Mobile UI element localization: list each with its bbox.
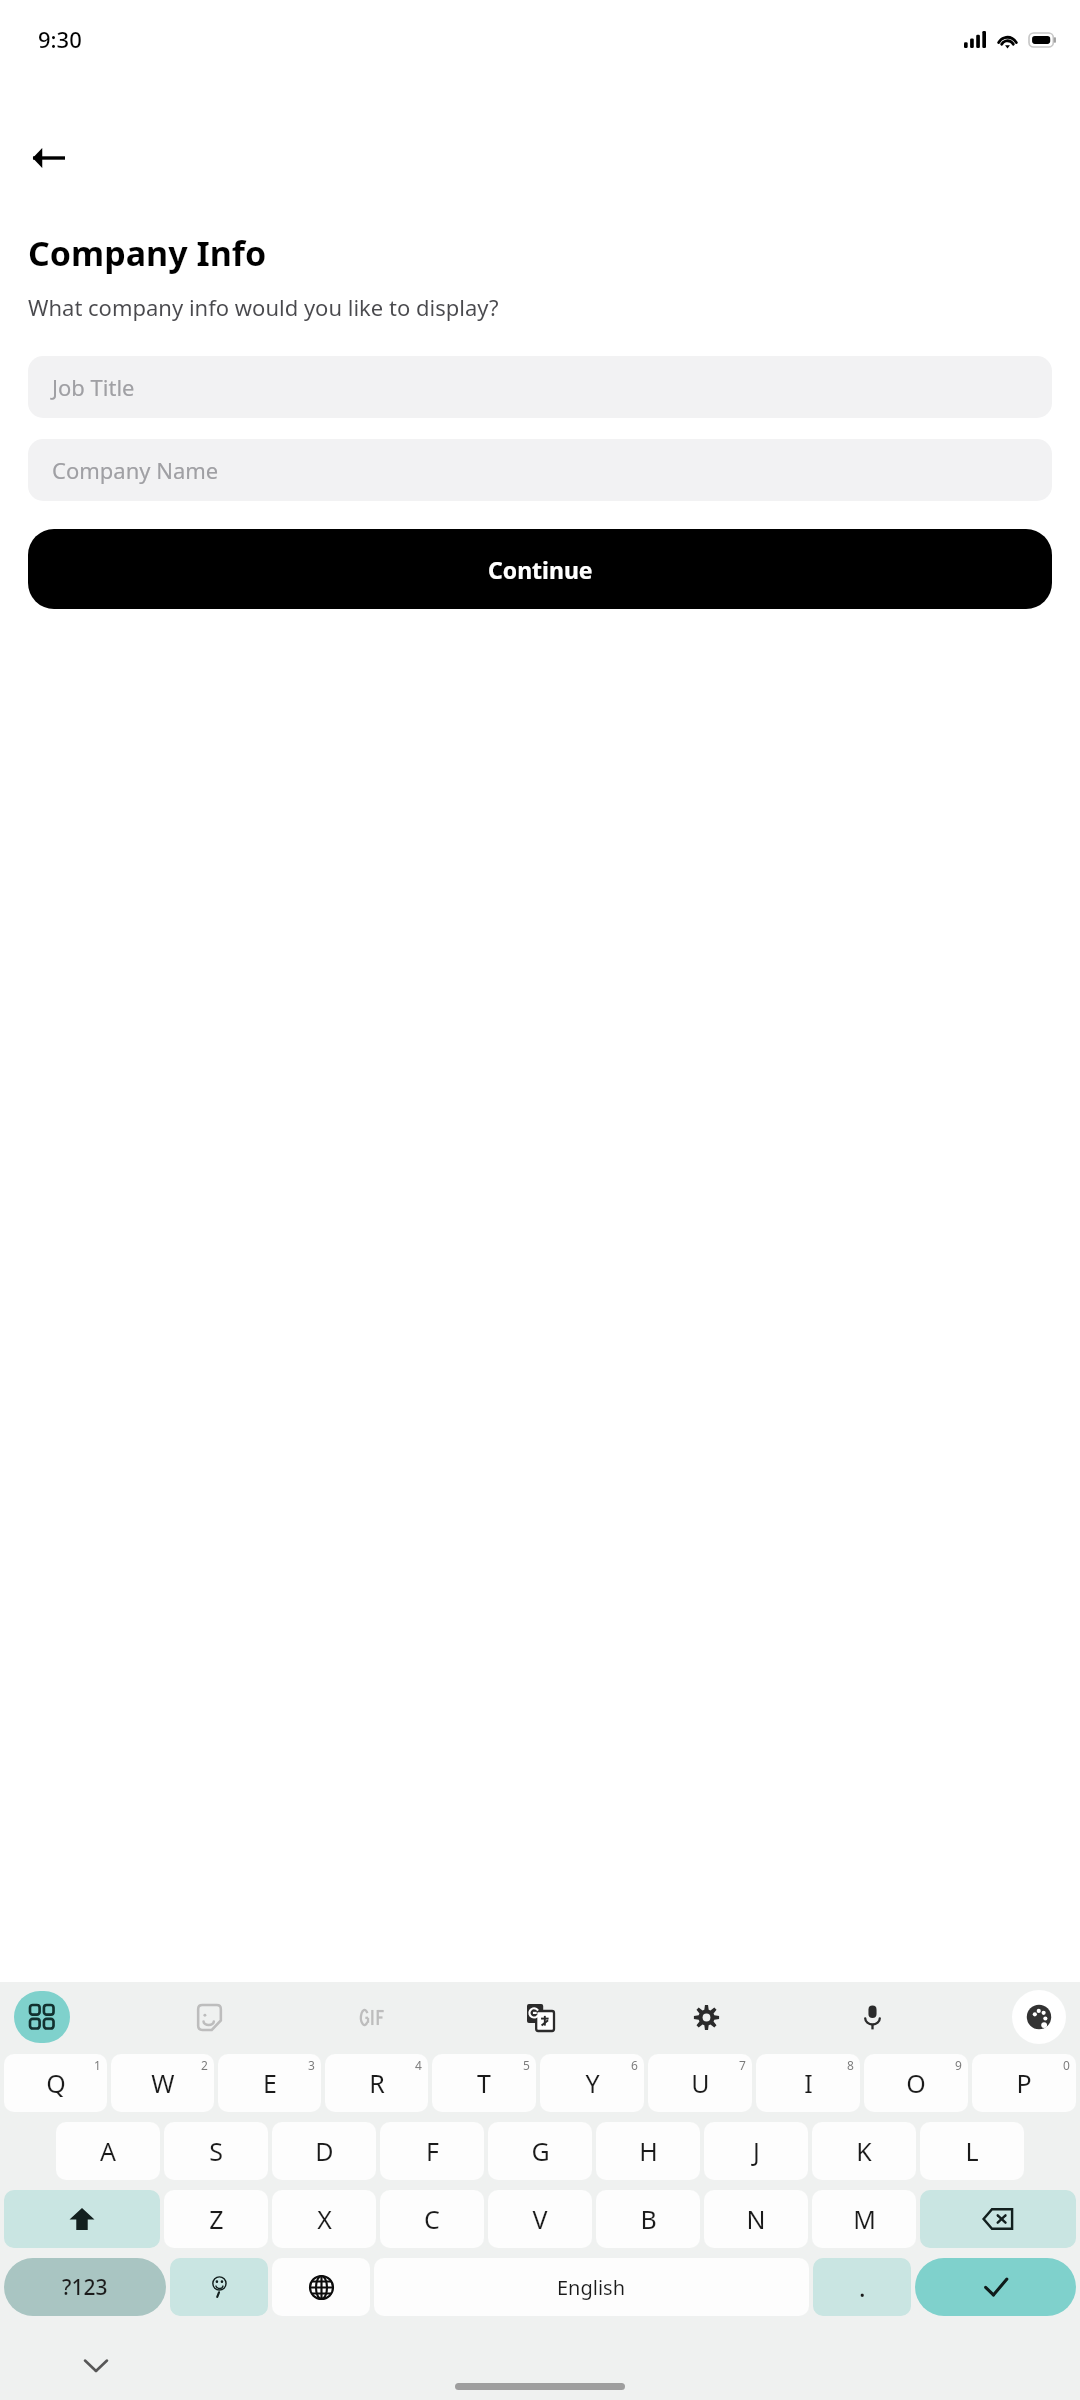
- button[interactable]: W: [111, 2054, 214, 2112]
- staticText: P: [1016, 2066, 1032, 2100]
- button[interactable]: P: [972, 2054, 1076, 2112]
- staticText: 5: [523, 2057, 530, 2073]
- button[interactable]: D: [272, 2122, 376, 2180]
- staticText: 9: [955, 2057, 962, 2073]
- button[interactable]: Emoji: [170, 2258, 268, 2316]
- staticText: Q: [46, 2066, 66, 2100]
- button[interactable]: H: [596, 2122, 700, 2180]
- button[interactable]: R: [325, 2054, 428, 2112]
- button[interactable]: Hide keyboard: [74, 2343, 118, 2387]
- staticText: X: [317, 2202, 332, 2236]
- staticText: I: [804, 2066, 813, 2100]
- button[interactable]: U: [648, 2054, 752, 2112]
- staticText: E: [263, 2066, 277, 2100]
- staticText: 0: [1063, 2057, 1070, 2073]
- button[interactable]: N: [704, 2190, 808, 2248]
- staticText: L: [965, 2134, 979, 2168]
- staticText: 4: [415, 2057, 422, 2073]
- staticText: Company Name: [52, 455, 219, 485]
- staticText: What company info would you like to disp…: [28, 292, 499, 322]
- button[interactable]: T: [432, 2054, 536, 2112]
- staticText: G: [531, 2134, 550, 2168]
- staticText: 2: [201, 2057, 208, 2073]
- button[interactable]: Voice input: [846, 1991, 898, 2043]
- staticText: D: [315, 2134, 334, 2168]
- button[interactable]: Back: [20, 130, 76, 186]
- button[interactable]: Settings: [680, 1991, 732, 2043]
- button[interactable]: E: [218, 2054, 321, 2112]
- button[interactable]: B: [596, 2190, 700, 2248]
- staticText: F: [426, 2134, 439, 2168]
- button[interactable]: Backspace: [920, 2190, 1076, 2248]
- staticText: T: [477, 2066, 491, 2100]
- staticText: C: [424, 2202, 440, 2236]
- staticText: M: [853, 2202, 876, 2236]
- button[interactable]: English: [374, 2258, 809, 2316]
- button[interactable]: G: [488, 2122, 592, 2180]
- button[interactable]: M: [812, 2190, 916, 2248]
- button[interactable]: V: [488, 2190, 592, 2248]
- button[interactable]: Themes: [1012, 1990, 1066, 2044]
- button[interactable]: Stickers: [183, 1991, 235, 2043]
- staticText: Company Info: [28, 230, 267, 276]
- button[interactable]: .: [813, 2258, 911, 2316]
- button[interactable]: K: [812, 2122, 916, 2180]
- staticText: B: [640, 2202, 657, 2236]
- staticText: .: [859, 2271, 866, 2304]
- staticText: A: [100, 2134, 116, 2168]
- button[interactable]: S: [164, 2122, 268, 2180]
- staticText: 7: [739, 2057, 746, 2073]
- button[interactable]: Change language: [272, 2258, 370, 2316]
- staticText: 9:30: [38, 24, 82, 54]
- staticText: J: [753, 2134, 760, 2168]
- button[interactable]: Translate: [514, 1991, 566, 2043]
- staticText: Continue: [488, 554, 593, 585]
- staticText: S: [209, 2134, 223, 2168]
- staticText: K: [856, 2134, 872, 2168]
- button[interactable]: Q: [4, 2054, 107, 2112]
- button[interactable]: A: [56, 2122, 160, 2180]
- button[interactable]: O: [864, 2054, 968, 2112]
- staticText: O: [906, 2066, 926, 2100]
- button[interactable]: Z: [164, 2190, 268, 2248]
- staticText: V: [532, 2202, 548, 2236]
- button[interactable]: ?123: [4, 2258, 166, 2316]
- staticText: English: [557, 2274, 626, 2301]
- button[interactable]: J: [704, 2122, 808, 2180]
- staticText: 6: [631, 2057, 638, 2073]
- button[interactable]: C: [380, 2190, 484, 2248]
- button[interactable]: L: [920, 2122, 1024, 2180]
- staticText: Z: [209, 2202, 224, 2236]
- button[interactable]: Done: [915, 2258, 1076, 2316]
- button[interactable]: Job Title: [28, 356, 1052, 418]
- staticText: 8: [847, 2057, 854, 2073]
- staticText: U: [691, 2066, 710, 2100]
- staticText: ?123: [62, 2273, 108, 2302]
- staticText: 3: [308, 2057, 315, 2073]
- button[interactable]: Continue: [28, 529, 1052, 609]
- button[interactable]: GIF: [348, 1991, 400, 2043]
- staticText: R: [369, 2066, 385, 2100]
- staticText: Y: [585, 2066, 600, 2100]
- staticText: W: [151, 2066, 175, 2100]
- staticText: Job Title: [52, 372, 135, 402]
- button[interactable]: F: [380, 2122, 484, 2180]
- button[interactable]: X: [272, 2190, 376, 2248]
- button[interactable]: Company Name: [28, 439, 1052, 501]
- staticText: N: [746, 2202, 766, 2236]
- button[interactable]: Y: [540, 2054, 644, 2112]
- staticText: H: [639, 2134, 658, 2168]
- button[interactable]: Keyboard apps: [14, 1991, 70, 2043]
- button[interactable]: I: [756, 2054, 860, 2112]
- staticText: 1: [94, 2057, 101, 2073]
- button[interactable]: Shift: [4, 2190, 160, 2248]
